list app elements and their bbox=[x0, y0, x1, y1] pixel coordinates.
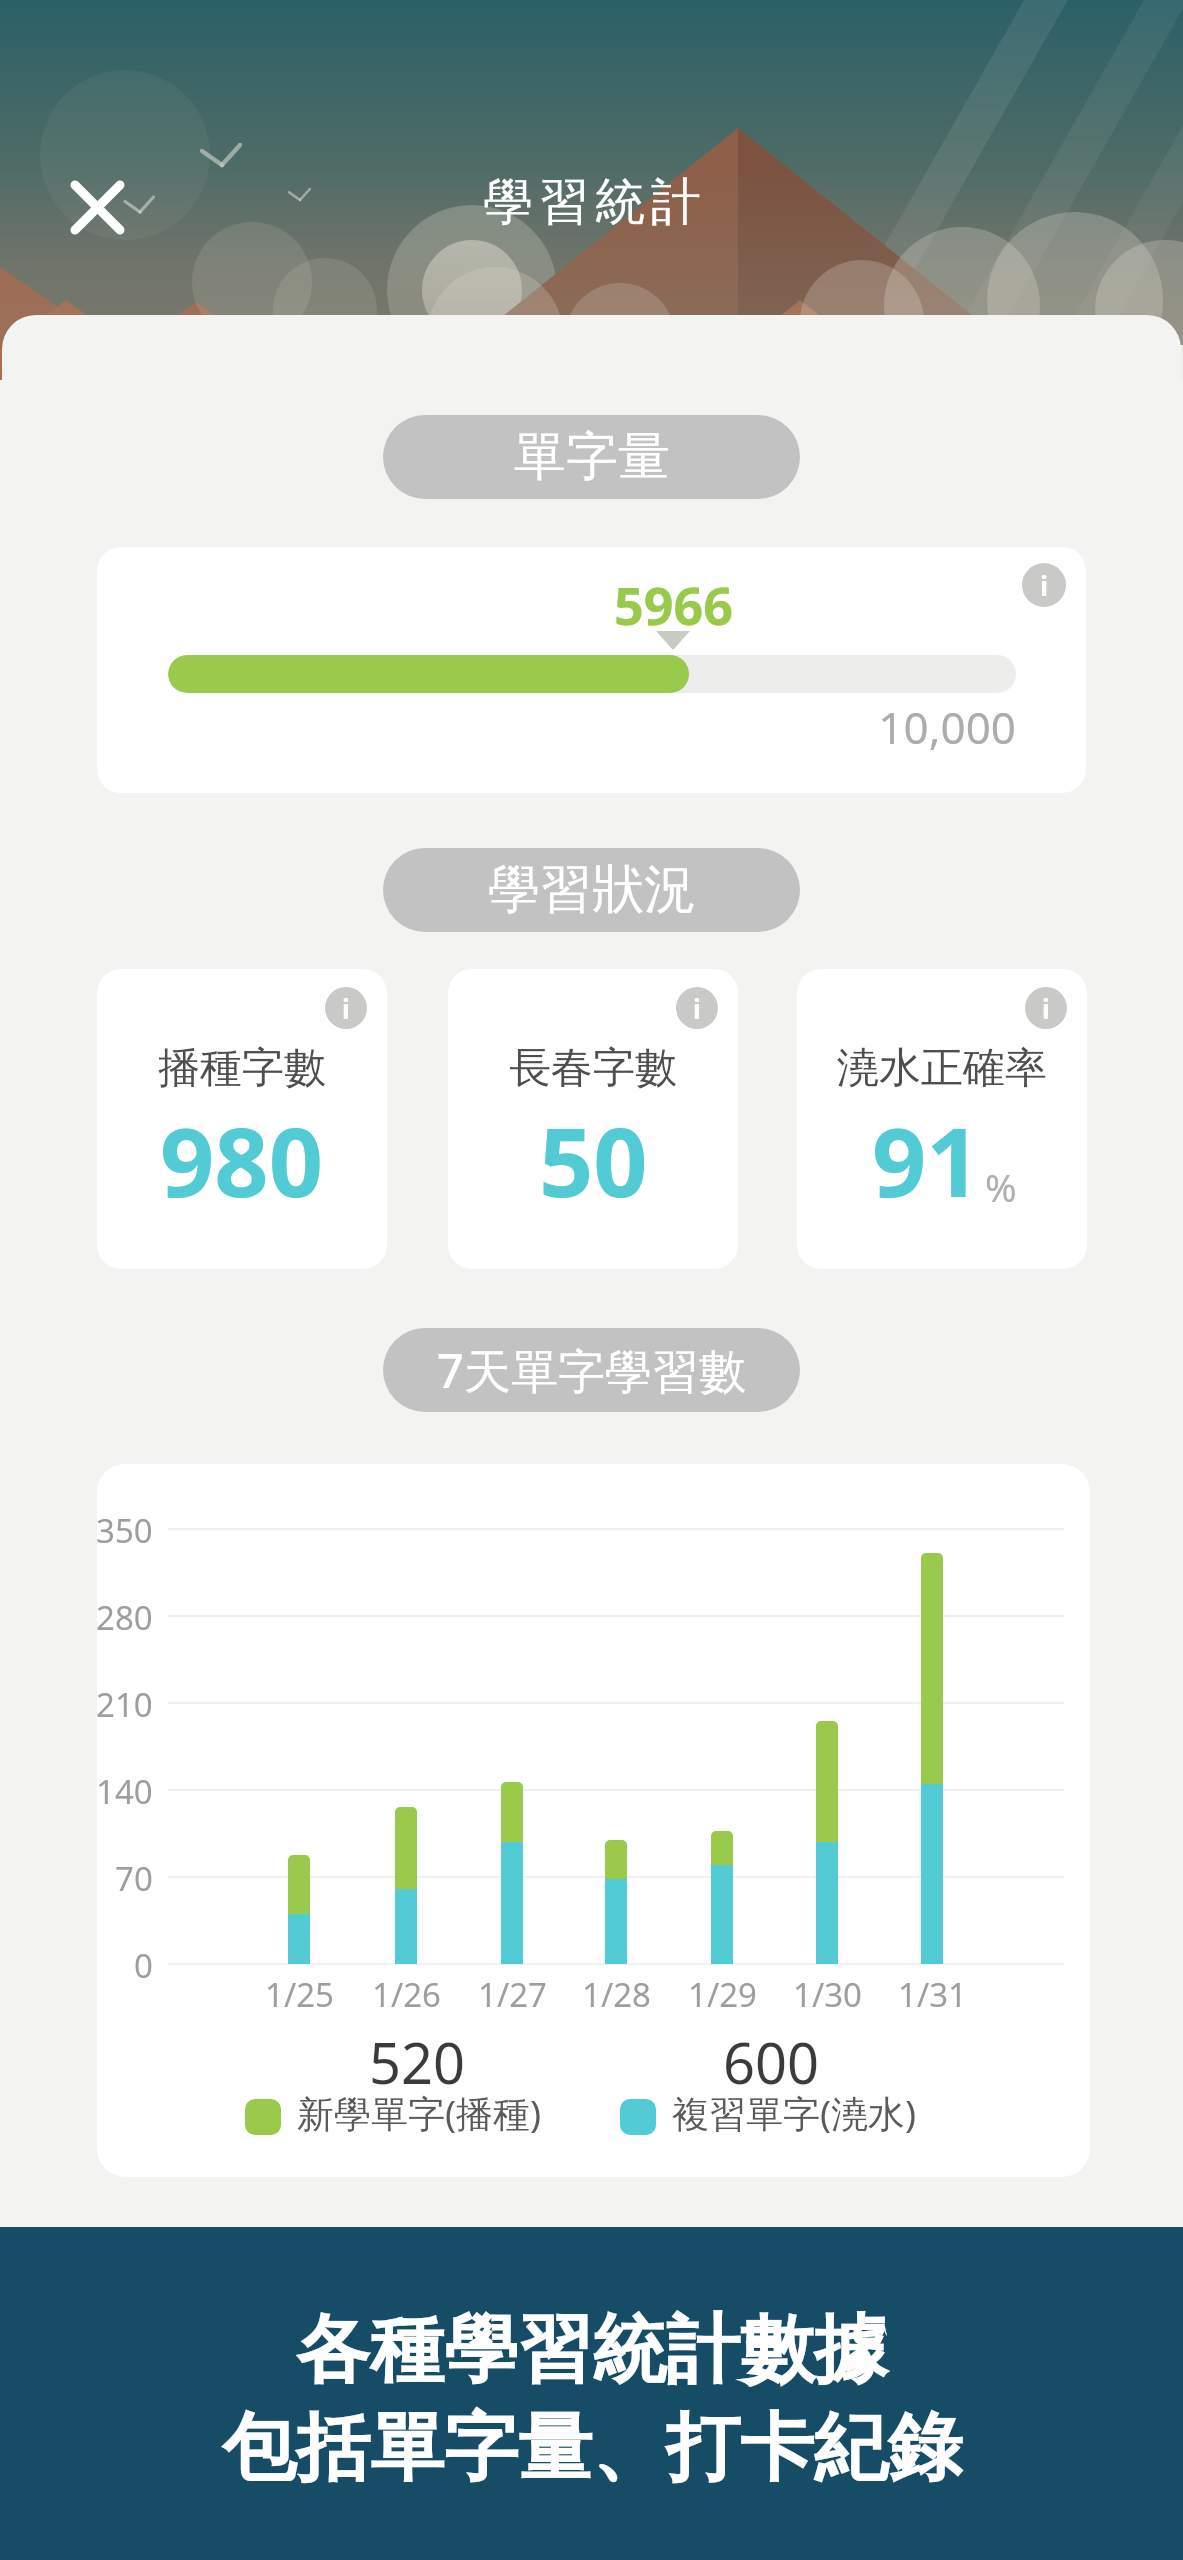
staticText: 1/29 bbox=[688, 1972, 757, 2017]
staticText: 0 bbox=[134, 1943, 153, 1988]
staticText: 1/27 bbox=[478, 1972, 547, 2017]
staticText: i bbox=[693, 991, 701, 1026]
staticText: 1/25 bbox=[265, 1972, 334, 2017]
staticText: 新學單字(播種) bbox=[297, 2087, 542, 2138]
staticText: 長春字數 bbox=[509, 1042, 677, 1095]
staticText: 播種字數 bbox=[158, 1042, 326, 1095]
button[interactable]: i bbox=[676, 987, 718, 1029]
staticText: 各種學習統計數據 bbox=[296, 2304, 888, 2397]
staticText: 7天單字學習數 bbox=[437, 1338, 746, 1402]
staticText: 1/28 bbox=[582, 1972, 651, 2017]
staticText: 1/31 bbox=[898, 1972, 967, 2017]
staticText: 520 bbox=[369, 2024, 466, 2100]
staticText: i bbox=[1040, 567, 1049, 604]
staticText: 學習統計 bbox=[480, 171, 704, 234]
staticText: 包括單字量、打卡紀錄 bbox=[222, 2402, 962, 2495]
staticText: 1/30 bbox=[793, 1972, 862, 2017]
staticText: i bbox=[342, 991, 350, 1026]
staticText: 學習狀況 bbox=[488, 857, 696, 923]
staticText: 350 bbox=[97, 1508, 153, 1553]
staticText: 600 bbox=[723, 2024, 820, 2100]
staticText: 280 bbox=[97, 1595, 153, 1640]
button[interactable]: i bbox=[1025, 987, 1067, 1029]
staticText: 70 bbox=[115, 1856, 153, 1901]
staticText: 10,000 bbox=[716, 697, 1016, 757]
button[interactable]: i bbox=[1022, 563, 1066, 607]
button[interactable]: i bbox=[325, 987, 367, 1029]
staticText: 5966 bbox=[614, 569, 733, 640]
staticText: 50 bbox=[539, 1095, 648, 1224]
staticText: 91 bbox=[872, 1095, 981, 1224]
staticText: % bbox=[985, 1161, 1017, 1213]
staticText: 980 bbox=[160, 1095, 324, 1224]
button[interactable] bbox=[60, 170, 135, 245]
staticText: 210 bbox=[97, 1682, 153, 1727]
staticText: i bbox=[1042, 991, 1050, 1026]
staticText: 1/26 bbox=[372, 1972, 441, 2017]
staticText: 複習單字(澆水) bbox=[672, 2087, 917, 2138]
staticText: 單字量 bbox=[514, 424, 670, 490]
staticText: 140 bbox=[97, 1769, 153, 1814]
staticText: 澆水正確率 bbox=[837, 1042, 1047, 1095]
